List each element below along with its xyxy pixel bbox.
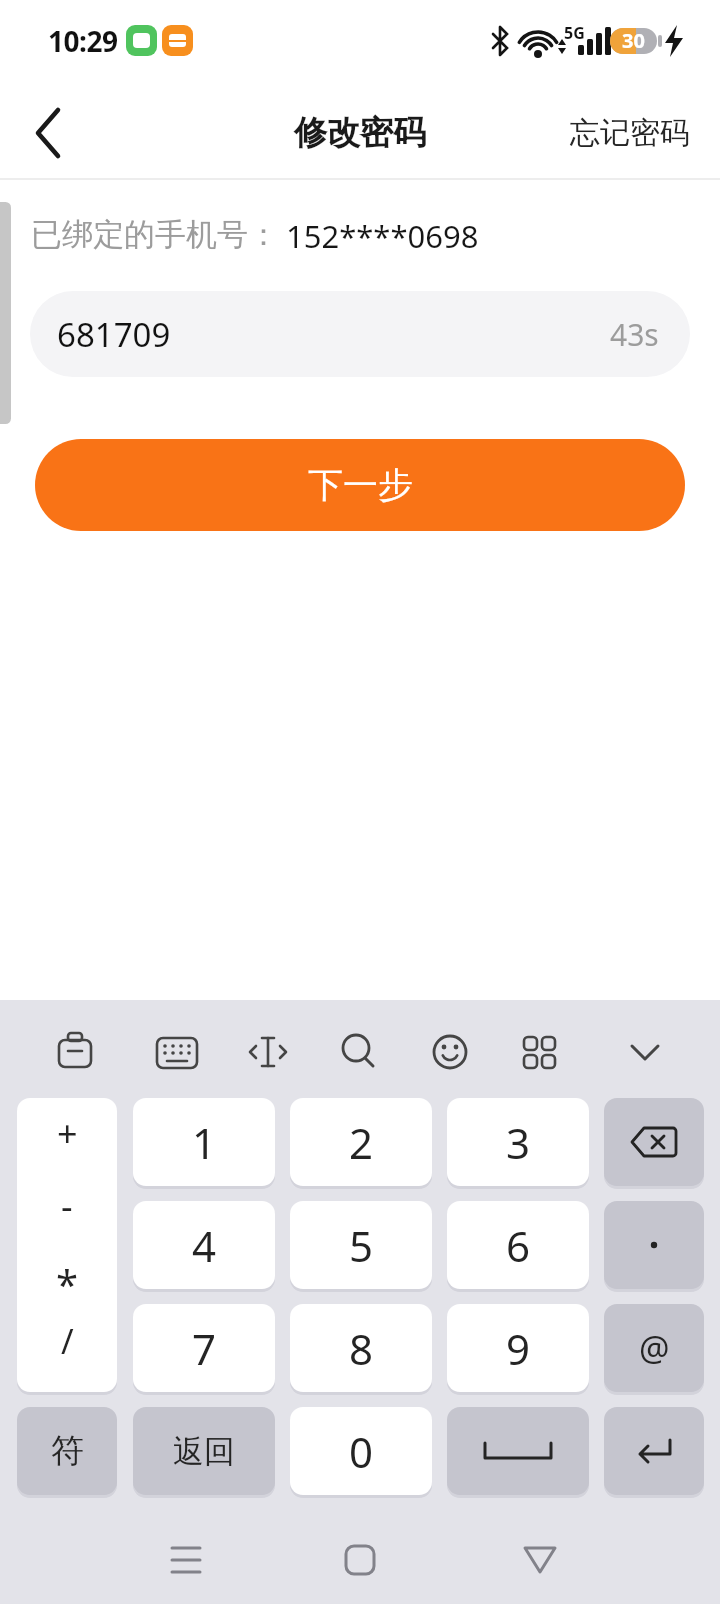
button[interactable] (147, 1022, 207, 1082)
button[interactable] (20, 105, 76, 161)
staticText: 2 (349, 1114, 374, 1171)
staticText: 下一步 (308, 463, 413, 507)
button[interactable] (604, 1098, 704, 1186)
button[interactable] (146, 1520, 226, 1600)
staticText: + (57, 1109, 78, 1158)
button[interactable]: 下一步 (35, 439, 685, 531)
button[interactable]: 6 (447, 1201, 589, 1289)
button[interactable] (45, 1022, 105, 1082)
staticText: 9 (506, 1320, 531, 1377)
button[interactable]: 5 (290, 1201, 432, 1289)
staticText: 忘记密码 (570, 114, 690, 152)
staticText: 8 (349, 1320, 374, 1377)
button[interactable]: 忘记密码 (570, 114, 690, 152)
staticText: 4 (192, 1217, 217, 1274)
button[interactable] (238, 1022, 298, 1082)
staticText: 30 (622, 27, 645, 54)
button[interactable]: + (17, 1098, 117, 1392)
staticText: 修改密码 (294, 112, 426, 154)
staticText: @ (639, 1325, 670, 1371)
staticText: 符 (51, 1430, 84, 1472)
button[interactable] (447, 1407, 589, 1495)
staticText: 10:29 (48, 22, 118, 60)
button[interactable]: 0 (290, 1407, 432, 1495)
button[interactable] (510, 1022, 570, 1082)
staticText: 0 (349, 1423, 374, 1480)
button[interactable] (320, 1520, 400, 1600)
staticText: 43s (610, 314, 659, 355)
button[interactable]: 9 (447, 1304, 589, 1392)
button[interactable]: 符 (17, 1407, 117, 1495)
button[interactable]: 1 (133, 1098, 275, 1186)
staticText: 5 (349, 1217, 374, 1274)
button[interactable]: 7 (133, 1304, 275, 1392)
staticText: - (61, 1181, 73, 1230)
staticText: 5G (564, 22, 585, 44)
staticText: 152****0698 (286, 215, 479, 257)
staticText: 3 (506, 1114, 531, 1171)
button[interactable]: 3 (447, 1098, 589, 1186)
button[interactable] (604, 1407, 704, 1495)
button[interactable]: @ (604, 1304, 704, 1392)
button[interactable]: 8 (290, 1304, 432, 1392)
button[interactable] (615, 1022, 675, 1082)
button[interactable] (330, 1022, 390, 1082)
staticText: 7 (192, 1320, 217, 1377)
button[interactable] (420, 1022, 480, 1082)
staticText: 已绑定的手机号： (31, 215, 279, 254)
button[interactable]: 返回 (133, 1407, 275, 1495)
button[interactable]: 2 (290, 1098, 432, 1186)
staticText: 6 (506, 1217, 531, 1274)
button[interactable] (604, 1201, 704, 1289)
staticText: 返回 (173, 1432, 235, 1471)
staticText: 1 (192, 1114, 217, 1171)
button[interactable]: 681709 (30, 291, 690, 377)
staticText: / (61, 1318, 74, 1364)
staticText: 681709 (57, 312, 171, 357)
button[interactable] (500, 1520, 580, 1600)
button[interactable]: 4 (133, 1201, 275, 1289)
staticText: * (56, 1256, 79, 1310)
